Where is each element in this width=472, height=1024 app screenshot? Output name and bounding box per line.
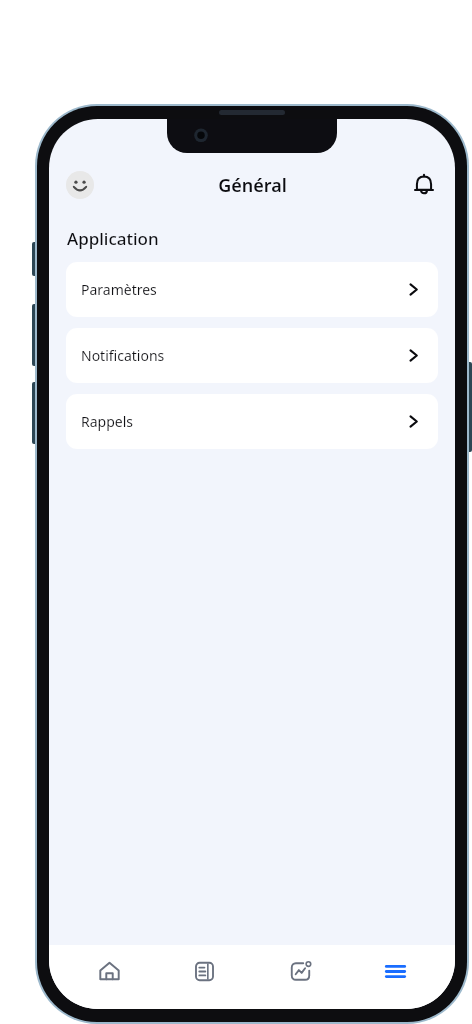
button[interactable]: Home [74,945,144,997]
button[interactable]: Notifications [409,170,439,200]
button[interactable]: Menu [360,945,430,997]
button[interactable]: Rappels [66,394,438,449]
button[interactable]: Notifications [66,328,438,383]
staticText: Paramètres [81,280,157,299]
staticText: Application [67,227,159,250]
button[interactable]: Statistics [265,945,335,997]
button[interactable]: Profile [66,171,94,199]
staticText: Notifications [81,346,165,365]
button[interactable]: Paramètres [66,262,438,317]
button[interactable]: Documents [169,945,239,997]
staticText: Rappels [81,412,133,431]
staticText: Général [218,173,287,198]
